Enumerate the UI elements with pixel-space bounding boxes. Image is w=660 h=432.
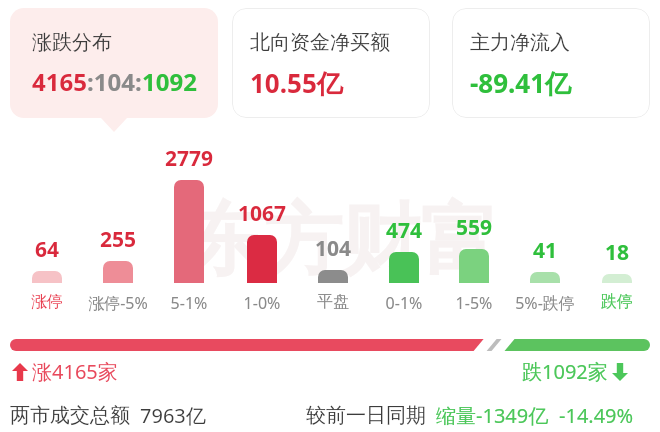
staticText: 64 (7, 235, 87, 264)
staticText: :104: (87, 65, 142, 98)
button[interactable] (602, 274, 632, 283)
button[interactable]: 跌1092家 (522, 358, 628, 385)
staticText: 较前一日同期 (306, 403, 426, 428)
staticText: 涨停 (0, 292, 94, 312)
button[interactable] (389, 252, 419, 283)
staticText: 两市成交总额 (10, 403, 130, 428)
staticText: 平盘 (286, 292, 380, 312)
staticText: 255 (78, 225, 158, 254)
staticText: 东方财富 (186, 192, 498, 290)
other: Advancing (12, 363, 28, 381)
staticText: 涨4165家 (32, 358, 118, 385)
staticText: 559 (434, 213, 514, 242)
staticText: 4165 (32, 65, 87, 98)
staticText: 1-5% (427, 292, 521, 314)
staticText: 主力净流入 (470, 30, 570, 55)
staticText: 1092 (142, 65, 197, 98)
staticText: 0-1% (357, 292, 451, 314)
staticText: 18 (577, 238, 657, 267)
staticText: 5%-跌停 (498, 292, 592, 314)
button[interactable] (32, 271, 62, 283)
button[interactable] (530, 272, 560, 283)
staticText: 41 (505, 236, 585, 265)
staticText: 缩量-1349亿 (436, 402, 549, 429)
staticText: 5-1% (142, 292, 236, 314)
button[interactable]: 0-1% (357, 292, 451, 314)
button[interactable]: 平盘 (286, 292, 380, 312)
button[interactable]: 1-0% (215, 292, 309, 314)
staticText: 474 (364, 216, 444, 245)
staticText: 涨跌分布 (32, 30, 112, 55)
button[interactable]: 涨停 (0, 292, 94, 312)
button[interactable]: 跌停 (570, 292, 660, 312)
button[interactable]: 涨跌分布 (10, 8, 218, 118)
button[interactable] (318, 270, 348, 283)
staticText: 跌停 (570, 292, 660, 312)
button[interactable]: 涨停-5% (71, 292, 165, 314)
staticText: 涨停-5% (71, 292, 165, 314)
staticText: 7963亿 (140, 402, 206, 429)
staticText: 10.55亿 (250, 65, 343, 101)
other: Declining (612, 363, 628, 381)
staticText: 跌1092家 (522, 358, 608, 385)
staticText: -14.49% (559, 402, 634, 429)
staticText: 北向资金净买额 (250, 30, 390, 55)
button[interactable]: 主力净流入 (452, 8, 650, 118)
staticText: 104 (293, 234, 373, 263)
staticText: 1067 (222, 199, 302, 228)
button[interactable] (103, 261, 133, 283)
button[interactable]: 北向资金净买额 (232, 8, 430, 118)
staticText: 2779 (149, 144, 229, 173)
button[interactable]: 1-5% (427, 292, 521, 314)
staticText: 1-0% (215, 292, 309, 314)
button[interactable] (459, 249, 489, 283)
button[interactable]: 5%-跌停 (498, 292, 592, 314)
staticText: -89.41亿 (470, 65, 572, 101)
button[interactable] (174, 180, 204, 283)
button[interactable] (247, 235, 277, 283)
button[interactable]: 5-1% (142, 292, 236, 314)
button[interactable]: Advancing (12, 358, 118, 385)
